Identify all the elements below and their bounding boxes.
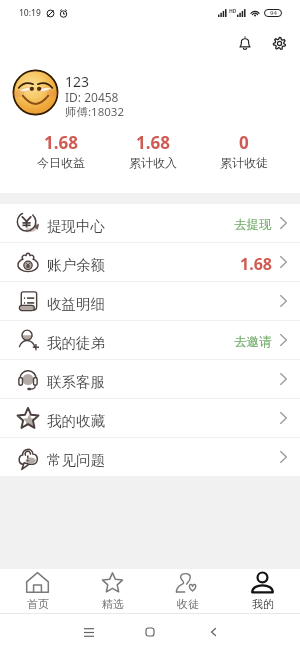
staticText: 去邀请 <box>234 334 272 350</box>
button[interactable]: 123 <box>0 60 300 124</box>
staticText: 0 <box>239 131 249 154</box>
staticText: 账户余额 <box>47 256 105 274</box>
staticText: 联系客服 <box>47 373 105 391</box>
staticText: 我的徒弟 <box>47 334 105 352</box>
staticText: 1.68 <box>240 253 272 275</box>
staticText: 提现中心 <box>47 217 105 235</box>
staticText: 我的收藏 <box>47 412 105 430</box>
staticText: 1.68 <box>44 131 78 154</box>
button[interactable]: 常见问题 <box>0 438 300 476</box>
button[interactable]: 收徒 <box>150 569 225 613</box>
button[interactable]: 提现中心 <box>0 204 300 242</box>
staticText: 师傅:18032 <box>65 104 124 120</box>
button[interactable]: 精选 <box>75 569 150 613</box>
button[interactable]: 我的 <box>225 569 300 613</box>
button[interactable]: Recents <box>77 620 101 644</box>
staticText: 我的 <box>252 597 274 611</box>
button[interactable]: 我的徒弟 <box>0 321 300 359</box>
button[interactable]: 1.68 <box>15 124 107 173</box>
staticText: HD <box>229 8 237 15</box>
button[interactable]: 0 <box>198 124 289 173</box>
button[interactable]: 联系客服 <box>0 360 300 398</box>
staticText: ID: 20458 <box>65 89 119 105</box>
staticText: 今日收益 <box>37 155 85 170</box>
staticText: 10:19 <box>19 7 41 19</box>
button[interactable]: Back <box>201 620 225 644</box>
staticText: 94 <box>270 9 277 17</box>
staticText: 精选 <box>102 597 124 611</box>
staticText: 收徒 <box>177 597 199 611</box>
button[interactable]: 1.68 <box>107 124 198 173</box>
staticText: 常见问题 <box>47 451 105 469</box>
staticText: 收益明细 <box>47 295 105 313</box>
staticText: 去提现 <box>234 217 272 233</box>
staticText: 1.68 <box>136 131 170 154</box>
staticText: 首页 <box>27 597 49 611</box>
button[interactable]: 首页 <box>0 569 75 613</box>
button[interactable]: 账户余额 <box>0 243 300 281</box>
staticText: 累计收徒 <box>220 155 268 170</box>
staticText: 累计收入 <box>129 155 177 170</box>
staticText: 123 <box>65 72 90 91</box>
button[interactable]: Home <box>138 620 162 644</box>
button[interactable]: 我的收藏 <box>0 399 300 437</box>
button[interactable]: 收益明细 <box>0 282 300 320</box>
button[interactable]: Notifications <box>231 29 259 57</box>
button[interactable]: Settings <box>265 29 293 57</box>
